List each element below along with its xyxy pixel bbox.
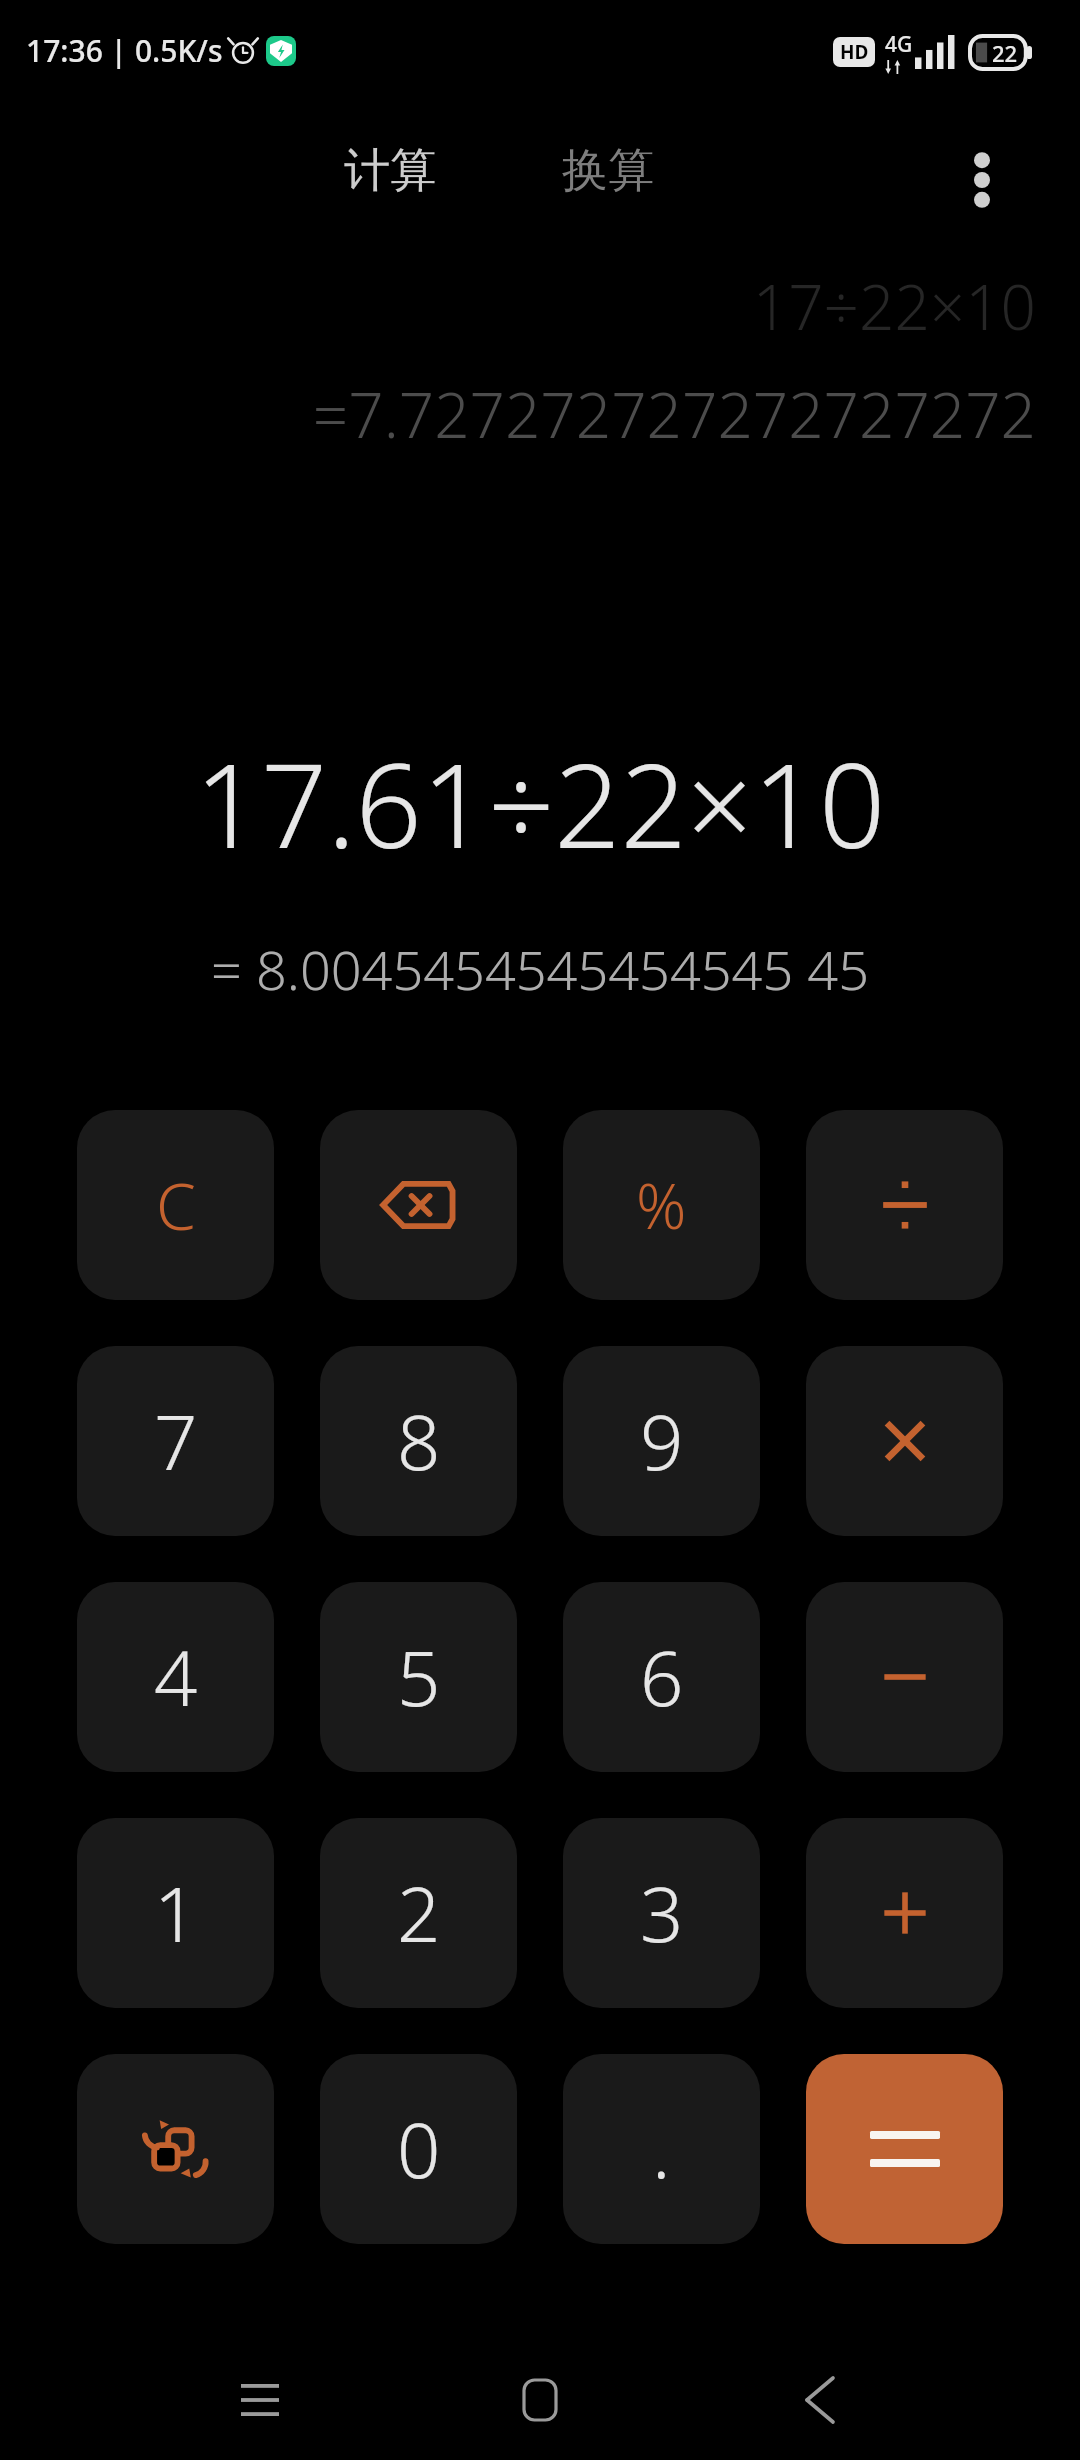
staticText: 2 — [397, 1861, 441, 1965]
button[interactable]: 8 — [320, 1346, 517, 1536]
button[interactable]: 7 — [77, 1346, 274, 1536]
button[interactable]: Percent — [563, 1110, 760, 1300]
staticText: =7.727272727272727272 — [44, 372, 1036, 456]
button[interactable]: Home — [498, 2358, 582, 2442]
staticText: . — [652, 2097, 671, 2201]
staticText: = 8.0045454545454545 45 — [52, 932, 1028, 1006]
button[interactable]: Minus — [806, 1582, 1003, 1772]
staticText: HD — [840, 39, 869, 65]
button[interactable]: Recents — [218, 2358, 302, 2442]
staticText: 4 — [154, 1625, 198, 1729]
button[interactable]: Divide — [806, 1110, 1003, 1300]
staticText: 8 — [397, 1389, 441, 1493]
staticText: 6 — [640, 1625, 684, 1729]
staticText: 7 — [154, 1389, 198, 1493]
staticText: 1 — [154, 1861, 198, 1965]
button[interactable]: 换算 — [556, 138, 660, 204]
button[interactable]: . — [563, 2054, 760, 2244]
staticText: 5 — [397, 1625, 441, 1729]
staticText: 22 — [992, 38, 1018, 68]
staticText: 3 — [640, 1861, 684, 1965]
staticText: 9 — [640, 1389, 684, 1493]
button[interactable]: More options — [944, 142, 1020, 218]
button[interactable]: 计算 — [338, 138, 442, 204]
button[interactable]: 4 — [77, 1582, 274, 1772]
button[interactable]: 0 — [320, 2054, 517, 2244]
button[interactable]: Equals — [806, 2054, 1003, 2244]
button[interactable]: 9 — [563, 1346, 760, 1536]
button[interactable]: 3 — [563, 1818, 760, 2008]
staticText: C — [156, 1162, 196, 1249]
button[interactable]: Back — [778, 2358, 862, 2442]
button[interactable]: Multiply — [806, 1346, 1003, 1536]
button[interactable]: 5 — [320, 1582, 517, 1772]
staticText: 0 — [397, 2097, 441, 2201]
staticText: 换算 — [562, 142, 654, 200]
button[interactable]: Backspace — [320, 1110, 517, 1300]
button[interactable]: 1 — [77, 1818, 274, 2008]
button[interactable]: 6 — [563, 1582, 760, 1772]
button[interactable]: Plus — [806, 1818, 1003, 2008]
staticText: 17.61÷22×10 — [52, 724, 1028, 882]
staticText: 计算 — [344, 142, 436, 200]
staticText: 17:36 | 0.5K/s — [26, 30, 223, 71]
button[interactable]: Clear — [77, 1110, 274, 1300]
staticText: % — [636, 1163, 687, 1247]
button[interactable]: Unit converter — [77, 2054, 274, 2244]
button[interactable]: 2 — [320, 1818, 517, 2008]
staticText: 17÷22×10 — [0, 264, 1036, 348]
staticText: 4G — [885, 30, 913, 59]
